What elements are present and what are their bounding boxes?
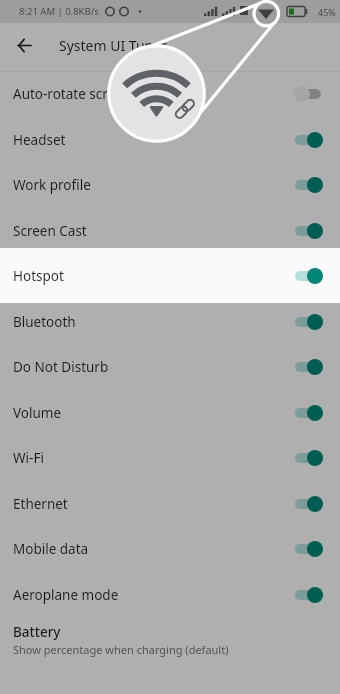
staticText: 45%: [318, 6, 336, 18]
staticText: Hotspot: [13, 267, 64, 285]
button[interactable]: Headset: [0, 117, 340, 162]
staticText: Aeroplane mode: [13, 586, 119, 604]
staticText: System UI Tuner: [59, 36, 167, 55]
button[interactable]: Ethernet: [0, 481, 340, 526]
staticText: 8:21 AM | 0.8KB/s: [19, 5, 99, 18]
staticText: Ethernet: [13, 495, 68, 513]
button[interactable]: Hotspot: [0, 253, 340, 298]
staticText: Bluetooth: [13, 313, 76, 331]
button[interactable]: Mobile data: [0, 526, 340, 571]
button[interactable]: Battery: [0, 617, 340, 662]
staticText: Auto-rotate screen: [13, 85, 132, 103]
staticText: Do Not Disturb: [13, 358, 109, 376]
staticText: Screen Cast: [13, 222, 87, 240]
staticText: Wi-Fi: [13, 449, 44, 467]
staticText: Mobile data: [13, 540, 89, 558]
button[interactable]: Bluetooth: [0, 299, 340, 344]
button[interactable]: Work profile: [0, 162, 340, 207]
button[interactable]: Wi-Fi: [0, 435, 340, 480]
button[interactable]: Aeroplane mode: [0, 572, 340, 617]
button[interactable]: Auto-rotate screen: [0, 71, 340, 116]
button[interactable]: Navigate up: [1, 22, 48, 69]
staticText: Show percentage when charging (default): [13, 642, 229, 657]
button[interactable]: Volume: [0, 390, 340, 435]
staticText: Headset: [13, 131, 66, 149]
staticText: Work profile: [13, 176, 91, 194]
staticText: Battery: [13, 623, 61, 641]
button[interactable]: Screen Cast: [0, 208, 340, 253]
button[interactable]: Do Not Disturb: [0, 344, 340, 389]
staticText: Volume: [13, 404, 62, 422]
